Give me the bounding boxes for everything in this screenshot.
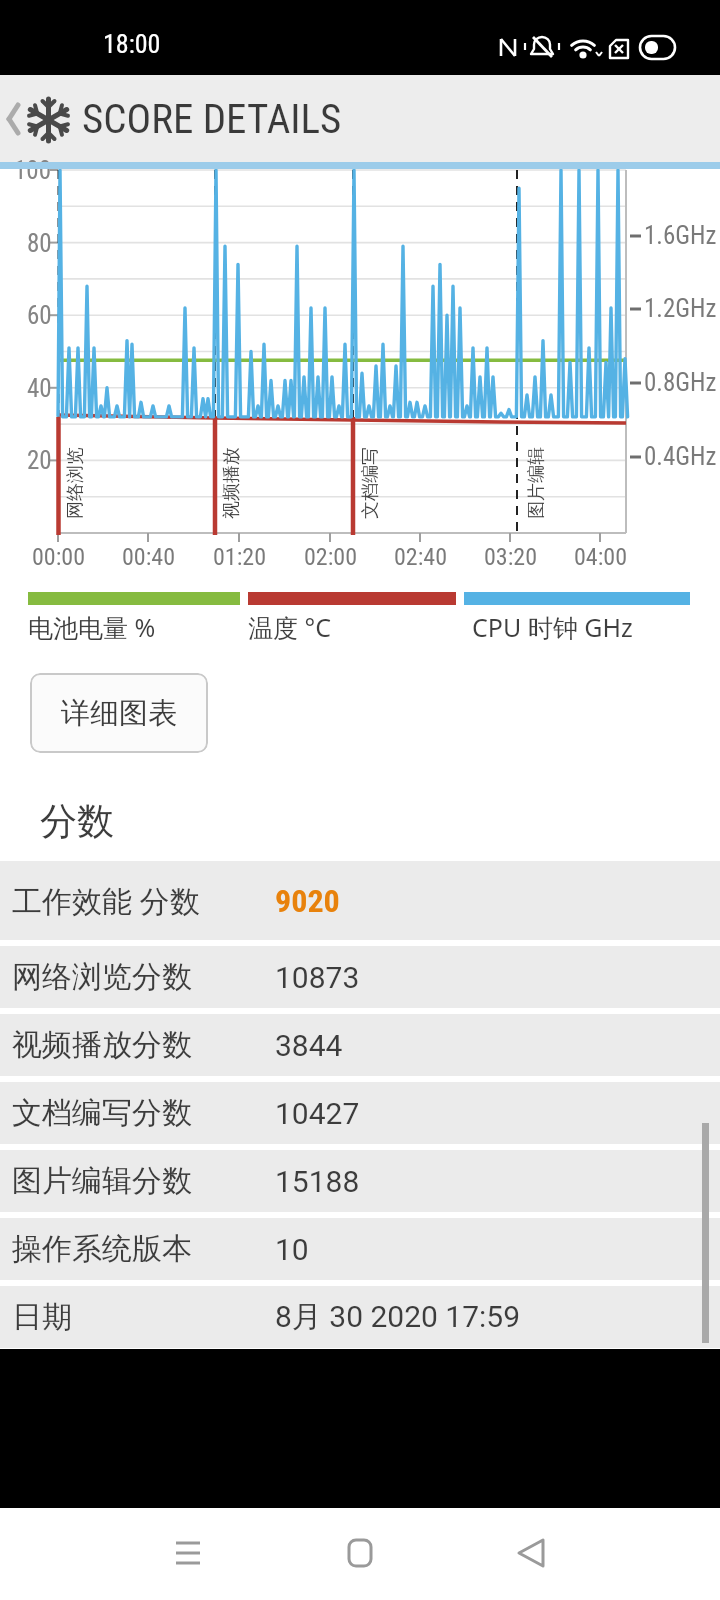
staticText: 60 [27, 301, 52, 330]
staticText: 10427 [275, 1096, 360, 1131]
staticText: 100 [14, 156, 52, 185]
staticText: 10873 [275, 960, 360, 995]
button[interactable]: 详细图表 [30, 673, 208, 753]
staticText: 04:00 [574, 543, 627, 571]
staticText: 日期 [12, 1298, 72, 1336]
staticText: 工作效能 分数 [12, 880, 200, 921]
button[interactable]: 日期 [0, 1286, 720, 1348]
staticText: 02:40 [394, 543, 447, 571]
button[interactable]: 视频播放分数 [0, 1014, 720, 1076]
button[interactable]: 图片编辑分数 [0, 1150, 720, 1212]
staticText: 1.6GHz [644, 221, 717, 250]
staticText: 15188 [275, 1164, 360, 1199]
staticText: 02:00 [304, 543, 357, 571]
staticText: SCORE DETAILS [82, 95, 342, 143]
staticText: 00:00 [32, 543, 85, 571]
staticText: 0.4GHz [644, 442, 717, 471]
staticText: 操作系统版本 [12, 1230, 192, 1268]
staticText: 电池电量 % [28, 610, 156, 644]
staticText: 1.2GHz [644, 294, 717, 323]
staticText: 图片编辑分数 [12, 1162, 192, 1200]
staticText: 文档编写分数 [12, 1094, 192, 1132]
staticText: 01:20 [213, 543, 266, 571]
staticText: 18:00 [103, 29, 161, 59]
button[interactable] [330, 1528, 390, 1578]
staticText: 10 [275, 1232, 309, 1267]
staticText: 03:20 [484, 543, 537, 571]
button[interactable] [500, 1528, 560, 1578]
staticText: 图片编辑 [525, 447, 548, 519]
staticText: 分数 [40, 798, 114, 845]
staticText: 00:40 [122, 543, 175, 571]
staticText: 0.8GHz [644, 368, 717, 397]
staticText: 9020 [275, 882, 340, 920]
staticText: CPU 时钟 GHz [472, 610, 633, 644]
staticText: 8月 30 2020 17:59 [275, 1298, 521, 1336]
staticText: 详细图表 [61, 695, 177, 732]
button[interactable]: 文档编写分数 [0, 1082, 720, 1144]
staticText: 网络浏览分数 [12, 958, 192, 996]
staticText: 80 [27, 229, 52, 258]
button[interactable]: SCORE DETAILS [0, 75, 720, 162]
staticText: 视频播放 [220, 447, 243, 519]
staticText: 40 [27, 374, 52, 403]
staticText: 网络浏览 [64, 447, 87, 519]
button[interactable]: 工作效能 分数 [0, 861, 720, 940]
staticText: 3844 [275, 1028, 343, 1063]
staticText: 20 [27, 446, 52, 475]
staticText: 视频播放分数 [12, 1026, 192, 1064]
staticText: 文档编写 [359, 447, 382, 519]
button[interactable]: 操作系统版本 [0, 1218, 720, 1280]
button[interactable]: 网络浏览分数 [0, 946, 720, 1008]
button[interactable] [158, 1528, 218, 1578]
staticText: 温度 °C [248, 610, 332, 644]
